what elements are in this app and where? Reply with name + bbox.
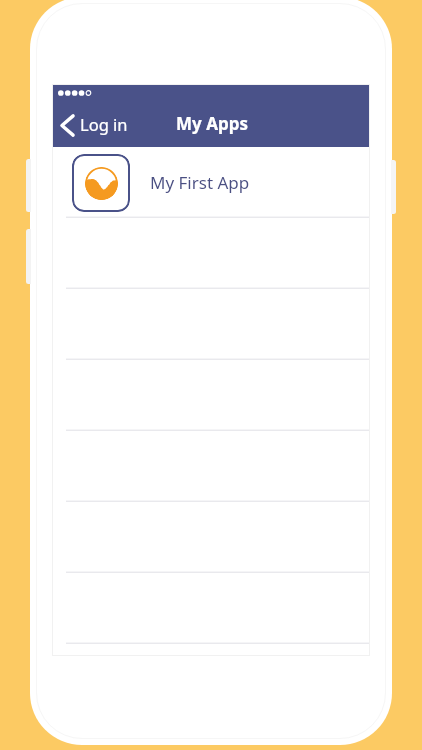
button[interactable]: My First App <box>52 147 370 218</box>
staticText: My Apps <box>176 112 248 135</box>
staticText: Log in <box>80 113 128 135</box>
staticText: My First App <box>150 171 250 194</box>
button[interactable]: Log in <box>60 112 128 135</box>
